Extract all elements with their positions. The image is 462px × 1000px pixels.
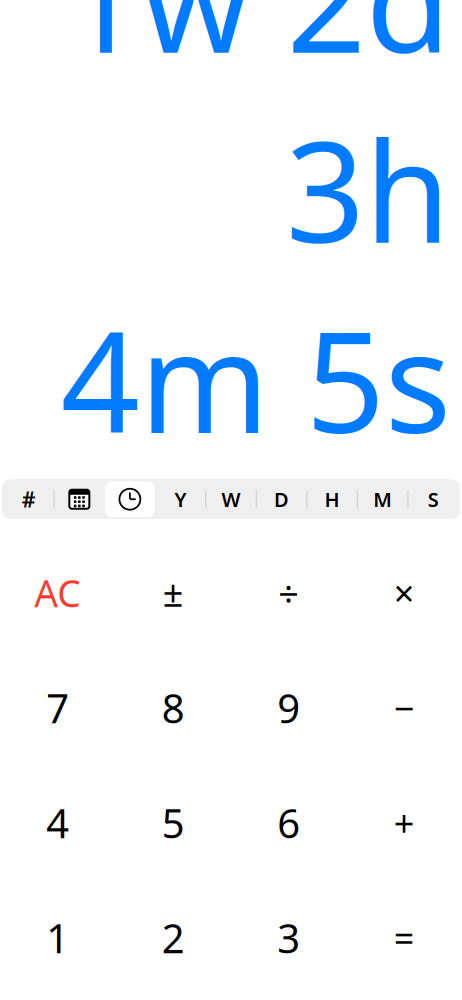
staticText: × (394, 569, 415, 617)
button[interactable] (55, 481, 104, 517)
button[interactable]: Divide (231, 535, 346, 650)
button[interactable]: S (408, 481, 458, 517)
button[interactable]: 8 (115, 650, 231, 765)
button[interactable]: 9 (231, 650, 346, 765)
button[interactable]: H (307, 481, 357, 517)
button[interactable]: # (4, 481, 54, 517)
button[interactable]: 4 (0, 765, 115, 880)
button[interactable]: All clear (0, 535, 115, 650)
button[interactable]: 2 (115, 880, 231, 995)
staticText: # (22, 485, 36, 513)
button[interactable]: 5 (115, 765, 231, 880)
staticText: 1 (46, 911, 69, 964)
button[interactable]: Multiply (346, 535, 462, 650)
staticText: W (221, 486, 240, 512)
button[interactable]: Minus (346, 650, 462, 765)
staticText: 8 (162, 681, 185, 734)
button[interactable]: W (206, 481, 256, 517)
button[interactable]: Y (156, 481, 205, 517)
staticText: 5 (162, 796, 185, 849)
button[interactable]: 7 (0, 650, 115, 765)
staticText: 7 (46, 681, 69, 734)
staticText: = (394, 914, 415, 962)
staticText: 3 (277, 911, 300, 964)
button[interactable]: M (358, 481, 407, 517)
staticText: ÷ (278, 569, 299, 617)
staticText: AC (34, 568, 81, 617)
button[interactable]: 3 (231, 880, 346, 995)
button[interactable]: Equals (346, 880, 462, 995)
staticText: H (325, 486, 340, 512)
staticText: ± (163, 569, 184, 617)
staticText: S (428, 486, 439, 512)
button[interactable]: 6 (231, 765, 346, 880)
staticText: M (373, 486, 392, 512)
staticText: − (394, 684, 415, 732)
button[interactable]: D (257, 481, 306, 517)
staticText: 1w 2d 3h 4m 5s (60, 0, 450, 471)
staticText: 9 (277, 681, 300, 734)
staticText: D (274, 486, 289, 512)
staticText: Y (174, 486, 186, 512)
button[interactable] (105, 481, 155, 517)
button[interactable]: 1 (0, 880, 115, 995)
staticText: + (394, 799, 415, 847)
staticText: 4 (46, 796, 69, 849)
button[interactable]: Plus (346, 765, 462, 880)
staticText: 2 (162, 911, 185, 964)
button[interactable]: Plus minus (115, 535, 231, 650)
staticText: 6 (277, 796, 300, 849)
